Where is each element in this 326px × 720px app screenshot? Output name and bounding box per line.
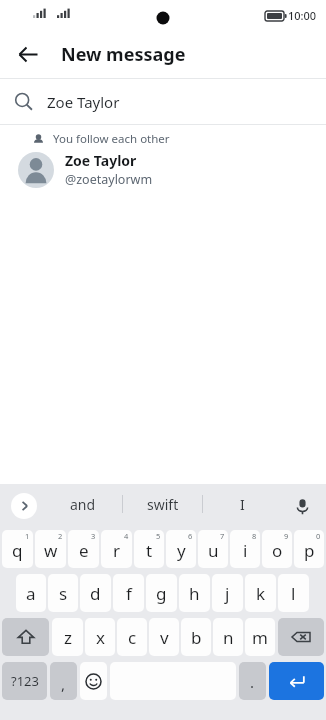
staticText: j	[225, 582, 230, 605]
staticText: e	[79, 539, 89, 562]
button[interactable]: p	[294, 530, 324, 568]
staticText: q	[12, 539, 23, 562]
staticText: v	[160, 626, 169, 649]
button[interactable]: and	[44, 484, 122, 524]
staticText: a	[26, 582, 36, 605]
button[interactable]: s	[48, 574, 78, 612]
button[interactable]: j	[212, 574, 243, 612]
staticText: w	[44, 539, 58, 562]
staticText: 3	[91, 531, 96, 541]
button[interactable]: e	[68, 530, 99, 568]
staticText: New message	[61, 42, 186, 67]
staticText: z	[64, 626, 72, 649]
button[interactable]: ,	[50, 662, 77, 700]
staticText: l	[291, 582, 296, 605]
button[interactable]: Shift	[2, 618, 49, 656]
button[interactable]: ?123	[2, 662, 47, 700]
button[interactable]: z	[52, 618, 83, 656]
button[interactable]: I	[203, 484, 282, 524]
button[interactable]: m	[245, 618, 275, 656]
staticText: u	[208, 539, 219, 562]
button[interactable]: Zoe Taylor	[0, 79, 326, 124]
staticText: p	[304, 539, 315, 562]
staticText: 4	[124, 531, 129, 541]
staticText: i	[243, 539, 248, 562]
button[interactable]: f	[113, 574, 144, 612]
staticText: o	[272, 539, 283, 562]
staticText: n	[223, 626, 234, 649]
button[interactable]: More suggestions	[11, 493, 37, 519]
staticText: and	[70, 495, 96, 514]
button[interactable]: g	[146, 574, 177, 612]
button[interactable]: i	[230, 530, 260, 568]
staticText: ,	[61, 674, 66, 694]
button[interactable]: o	[262, 530, 292, 568]
staticText: 5	[156, 531, 161, 541]
button[interactable]: You follow each other	[0, 125, 326, 188]
staticText: Zoe Taylor	[47, 92, 120, 112]
staticText: m	[252, 626, 268, 649]
button[interactable]: Back	[8, 34, 48, 74]
staticText: 7	[220, 531, 225, 541]
staticText: f	[126, 582, 132, 605]
button[interactable]: d	[80, 574, 111, 612]
staticText: @zoetaylorwm	[65, 171, 153, 188]
button[interactable]: l	[278, 574, 309, 612]
staticText: c	[128, 626, 137, 649]
staticText: swift	[147, 495, 179, 514]
button[interactable]: c	[117, 618, 147, 656]
staticText: .	[250, 672, 255, 692]
staticText: b	[191, 626, 202, 649]
staticText: g	[156, 582, 167, 605]
staticText: 1	[25, 531, 30, 541]
button[interactable]: k	[245, 574, 276, 612]
staticText: s	[59, 582, 68, 605]
staticText: 6	[188, 531, 193, 541]
button[interactable]: u	[198, 530, 228, 568]
button[interactable]: Voice input	[286, 490, 318, 522]
button[interactable]: b	[181, 618, 211, 656]
staticText: d	[90, 582, 101, 605]
button[interactable]: v	[149, 618, 179, 656]
staticText: k	[256, 582, 266, 605]
button[interactable]: h	[179, 574, 210, 612]
button[interactable]: r	[101, 530, 132, 568]
staticText: h	[189, 582, 200, 605]
staticText: 8	[252, 531, 257, 541]
button[interactable]: a	[16, 574, 46, 612]
button[interactable]: Emoji	[80, 662, 107, 700]
button[interactable]: Backspace	[278, 618, 324, 656]
button[interactable]: w	[35, 530, 66, 568]
staticText: x	[96, 626, 105, 649]
staticText: 9	[284, 531, 289, 541]
staticText: 10:00	[288, 8, 317, 23]
staticText: t	[146, 539, 153, 562]
staticText: Zoe Taylor	[65, 151, 137, 170]
button[interactable]: t	[134, 530, 164, 568]
staticText: 0	[316, 531, 321, 541]
staticText: I	[240, 495, 245, 514]
button[interactable]: q	[2, 530, 33, 568]
button[interactable]: .	[239, 662, 266, 700]
button[interactable]: Enter	[269, 662, 324, 700]
button[interactable]: n	[213, 618, 243, 656]
staticText: r	[113, 539, 121, 562]
button[interactable]: swift	[123, 484, 202, 524]
staticText: You follow each other	[53, 131, 170, 147]
staticText: ?123	[11, 672, 39, 690]
staticText: 2	[58, 531, 63, 541]
staticText: y	[177, 539, 186, 562]
button[interactable]: x	[85, 618, 115, 656]
button[interactable]: y	[166, 530, 196, 568]
